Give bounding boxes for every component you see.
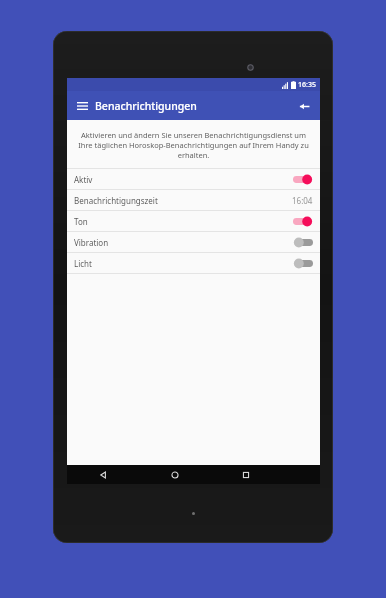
button[interactable]: Menü öffnen: [72, 96, 92, 116]
button[interactable]: Licht: [67, 253, 320, 273]
staticText: 16:35: [298, 80, 316, 90]
button[interactable]: Zurück: [67, 465, 139, 484]
button[interactable]: [293, 258, 313, 269]
staticText: Benachrichtigungen: [95, 99, 197, 113]
staticText: Vibration: [74, 237, 109, 248]
button[interactable]: Letzte Apps: [210, 465, 281, 484]
button[interactable]: Ton: [67, 211, 320, 231]
staticText: 16:04: [292, 195, 313, 206]
button[interactable]: [293, 237, 313, 248]
staticText: Licht: [74, 258, 92, 269]
button[interactable]: Benachrichtigungszeit: [67, 190, 320, 210]
staticText: Aktivieren und ändern Sie unseren Benach…: [75, 130, 312, 160]
button[interactable]: Startbildschirm: [139, 465, 210, 484]
staticText: Benachrichtigungszeit: [74, 195, 158, 206]
button[interactable]: Aktiv: [67, 169, 320, 189]
button[interactable]: Vibration: [67, 232, 320, 252]
button[interactable]: [293, 174, 313, 185]
button[interactable]: [293, 216, 313, 227]
button[interactable]: Zurück: [294, 96, 314, 116]
staticText: Aktiv: [74, 174, 93, 185]
staticText: Ton: [74, 216, 88, 227]
